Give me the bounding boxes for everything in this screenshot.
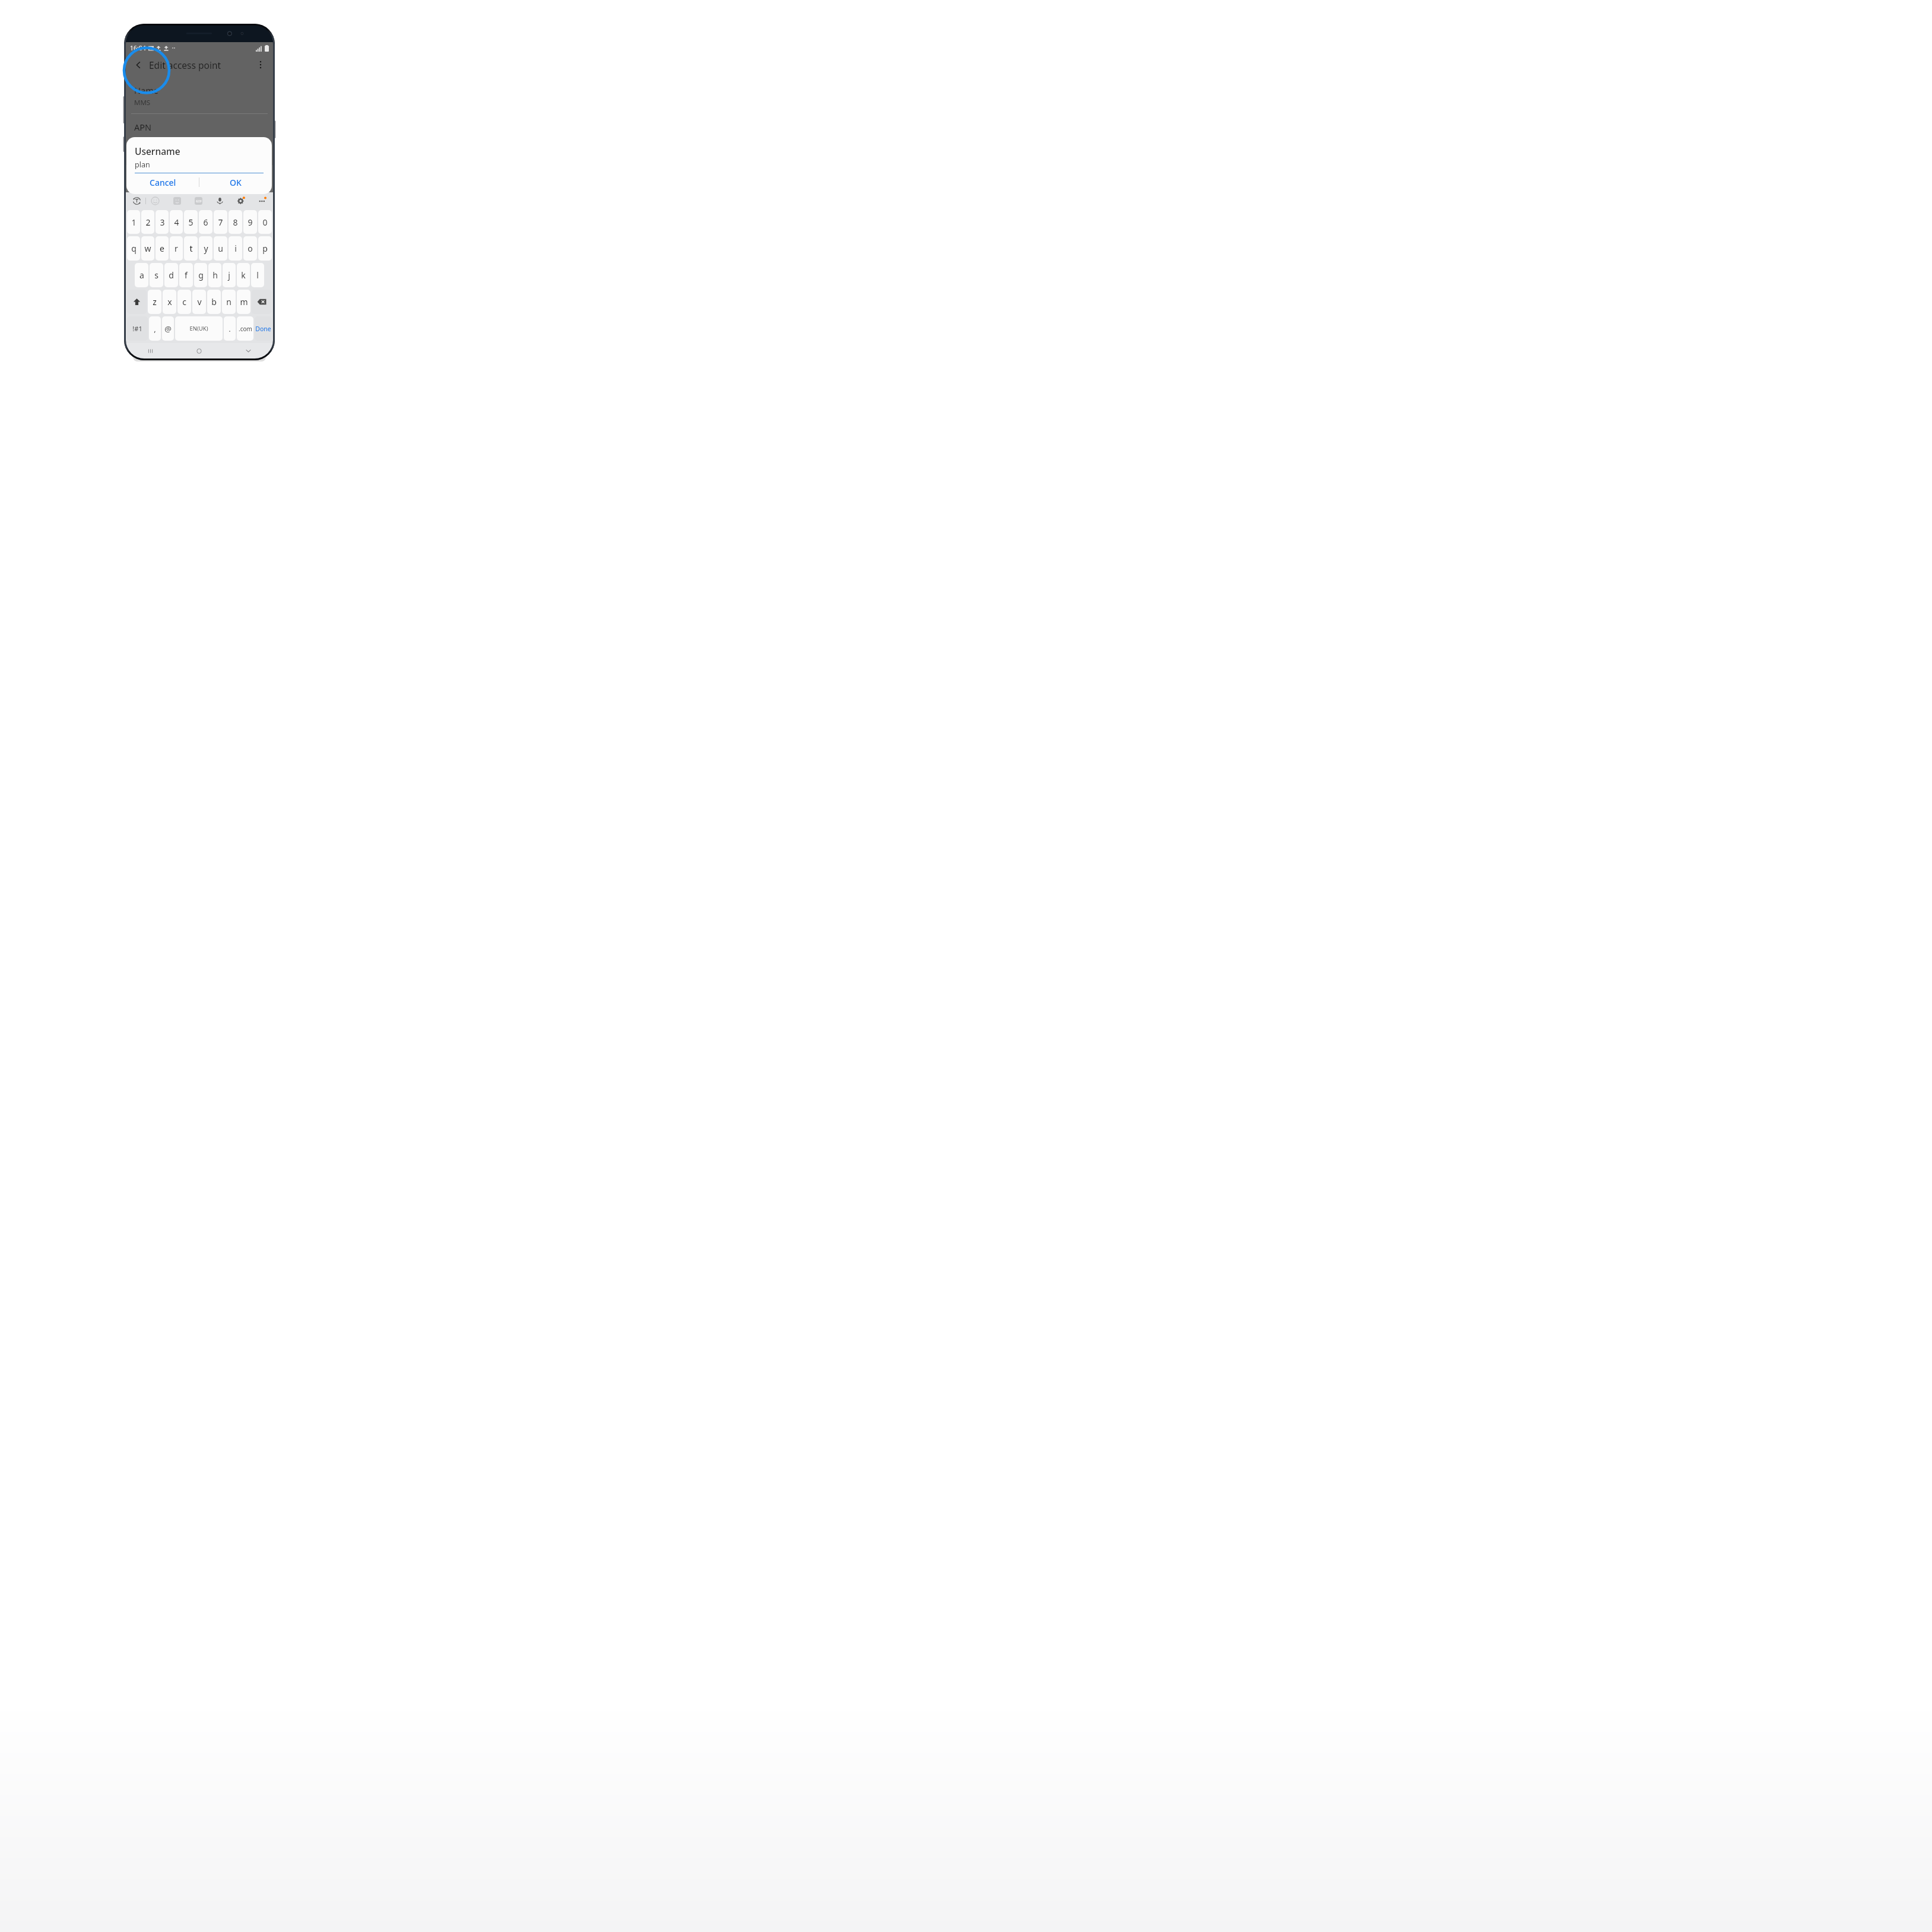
button[interactable]: g xyxy=(194,263,207,287)
button[interactable]: Backspace xyxy=(252,290,272,314)
button[interactable]: x xyxy=(163,290,176,314)
staticText: Cancel xyxy=(150,177,176,188)
button[interactable]: 6 xyxy=(199,210,212,234)
staticText: d xyxy=(169,269,174,281)
staticText: t xyxy=(189,243,193,254)
staticText: s xyxy=(154,269,158,281)
button[interactable]: b xyxy=(207,290,221,314)
button[interactable]: Recents xyxy=(126,343,175,359)
button[interactable]: 4 xyxy=(170,210,183,234)
button[interactable]: y xyxy=(199,236,212,261)
staticText: v xyxy=(197,296,202,307)
button[interactable]: EN(UK) xyxy=(175,316,223,341)
button[interactable]: m xyxy=(237,290,250,314)
button[interactable]: Voice input xyxy=(214,195,226,207)
button[interactable]: c xyxy=(177,290,191,314)
staticText: x xyxy=(167,296,172,307)
button[interactable]: f xyxy=(179,263,193,287)
staticText: EN(UK) xyxy=(189,325,208,332)
button[interactable]: More options xyxy=(253,57,268,72)
button[interactable]: w xyxy=(141,236,154,261)
button[interactable]: k xyxy=(237,263,250,287)
button[interactable]: Name xyxy=(126,80,273,113)
staticText: q xyxy=(131,243,137,254)
button[interactable]: Shift xyxy=(127,290,147,314)
button[interactable]: Done xyxy=(255,316,272,341)
button[interactable]: .com xyxy=(237,316,253,341)
staticText: y xyxy=(204,243,208,254)
staticText: k xyxy=(241,269,246,281)
button[interactable]: u xyxy=(214,236,227,261)
button[interactable]: d xyxy=(164,263,178,287)
staticText: m xyxy=(240,296,248,307)
staticText: Username xyxy=(135,145,180,157)
staticText: c xyxy=(182,296,186,307)
staticText: , xyxy=(154,323,156,334)
button[interactable]: 9 xyxy=(243,210,257,234)
button[interactable]: Translate xyxy=(131,195,142,207)
button[interactable]: n xyxy=(222,290,236,314)
button[interactable]: z xyxy=(148,290,161,314)
button[interactable]: e xyxy=(156,236,169,261)
button[interactable]: Hide keyboard xyxy=(224,343,273,359)
staticText: . xyxy=(229,323,231,334)
staticText: 2 xyxy=(145,217,151,228)
staticText: z xyxy=(153,296,157,307)
staticText: b xyxy=(211,296,217,307)
button[interactable]: , xyxy=(149,316,161,341)
button[interactable]: 7 xyxy=(214,210,227,234)
button[interactable]: 5 xyxy=(184,210,198,234)
staticText: Edit access point xyxy=(149,59,221,71)
button[interactable]: @ xyxy=(162,316,174,341)
button[interactable]: !#1 xyxy=(127,316,148,341)
button[interactable]: h xyxy=(208,263,221,287)
button[interactable]: i xyxy=(229,236,242,261)
button[interactable]: q xyxy=(127,236,140,261)
button[interactable]: Back xyxy=(131,57,146,72)
staticText: a xyxy=(139,269,144,281)
button[interactable]: a xyxy=(135,263,148,287)
staticText: p xyxy=(262,243,268,254)
button[interactable]: l xyxy=(251,263,264,287)
button[interactable]: o xyxy=(243,236,257,261)
staticText: w xyxy=(144,243,151,254)
button[interactable]: Stickers xyxy=(171,195,183,207)
staticText: 5 xyxy=(188,217,193,228)
staticText: u xyxy=(218,243,223,254)
button[interactable]: p xyxy=(258,236,272,261)
button[interactable]: GIF xyxy=(192,195,204,207)
button[interactable]: 3 xyxy=(156,210,169,234)
button[interactable]: r xyxy=(170,236,183,261)
button[interactable]: j xyxy=(223,263,236,287)
button[interactable]: Keyboard settings xyxy=(235,195,247,207)
button[interactable]: s xyxy=(150,263,163,287)
staticText: 6 xyxy=(203,217,208,228)
staticText: plan xyxy=(135,160,150,170)
staticText: !#1 xyxy=(132,324,142,333)
staticText: l xyxy=(256,269,259,281)
button[interactable]: Emoji xyxy=(149,195,161,207)
button[interactable]: v xyxy=(192,290,206,314)
button[interactable]: . xyxy=(224,316,236,341)
button[interactable]: 2 xyxy=(141,210,154,234)
button[interactable]: t xyxy=(184,236,198,261)
button[interactable]: 0 xyxy=(258,210,272,234)
button[interactable]: Cancel xyxy=(126,173,199,191)
staticText: f xyxy=(185,269,188,281)
staticText: Done xyxy=(255,325,271,333)
button[interactable]: Home xyxy=(175,343,224,359)
staticText: i xyxy=(234,243,237,254)
staticText: e xyxy=(160,243,164,254)
staticText: 9 xyxy=(248,217,253,228)
staticText: GIF xyxy=(196,199,202,204)
button[interactable]: OK xyxy=(199,173,272,191)
staticText: g xyxy=(198,269,204,281)
staticText: .com xyxy=(239,325,252,333)
staticText: 4 xyxy=(174,217,179,228)
staticText: 0 xyxy=(262,217,268,228)
button[interactable]: 1 xyxy=(127,210,140,234)
button[interactable]: 8 xyxy=(229,210,242,234)
button[interactable]: More xyxy=(256,195,268,207)
staticText: r xyxy=(175,243,178,254)
staticText: 1 xyxy=(131,217,137,228)
